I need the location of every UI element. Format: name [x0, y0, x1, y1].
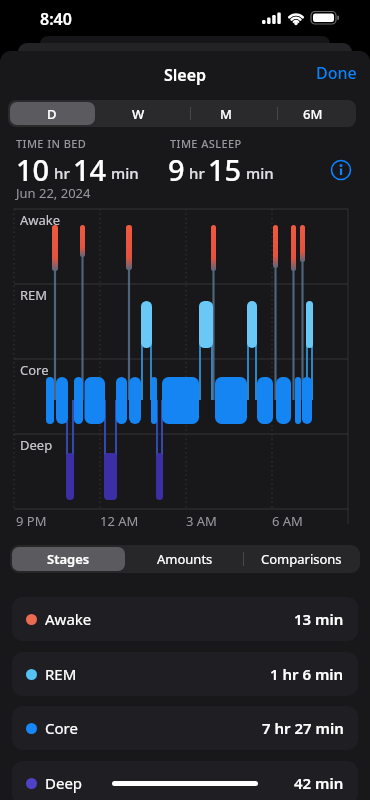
button[interactable]: M [182, 100, 269, 127]
staticText: Awake [45, 609, 92, 629]
staticText: 42 min [294, 773, 344, 793]
staticText: Done [316, 62, 357, 84]
button[interactable]: REM [12, 652, 358, 696]
staticText: 12 AM [100, 512, 139, 530]
staticText: M [220, 105, 232, 123]
staticText: Deep [45, 773, 83, 793]
staticText: REM [45, 664, 77, 684]
staticText: TIME ASLEEP [170, 136, 242, 151]
button[interactable] [328, 157, 354, 183]
staticText: 1 hr 6 min [270, 664, 344, 684]
staticText: Amounts [157, 550, 213, 568]
staticText: hr [54, 163, 70, 183]
staticText: Core [45, 718, 78, 738]
staticText: hr [189, 163, 205, 183]
button[interactable]: D [8, 100, 95, 127]
staticText: Deep [20, 436, 53, 454]
staticText: Sleep [0, 64, 370, 86]
staticText: 9 [168, 150, 185, 189]
staticText: 13 min [294, 609, 344, 629]
staticText: Awake [20, 211, 61, 229]
staticText: 6M [303, 105, 323, 123]
staticText: 7 hr 27 min [262, 718, 344, 738]
staticText: 3 AM [186, 512, 217, 530]
button[interactable]: Core [12, 706, 358, 750]
staticText: Stages [47, 550, 90, 568]
staticText: 8:40 [40, 8, 72, 30]
button[interactable]: Stages [10, 545, 126, 573]
staticText: D [47, 105, 57, 123]
staticText: 14 [73, 150, 107, 189]
staticText: 10 [16, 150, 50, 189]
button[interactable]: W [95, 100, 182, 127]
staticText: 9 PM [16, 512, 47, 530]
staticText: min [246, 163, 274, 183]
staticText: 6 AM [272, 512, 303, 530]
button[interactable]: Done [310, 57, 362, 89]
button[interactable]: Amounts [126, 545, 243, 573]
staticText: Comparisons [261, 550, 342, 568]
staticText: min [111, 163, 139, 183]
staticText: 15 [208, 150, 242, 189]
staticText: REM [20, 286, 48, 304]
button[interactable]: Deep [12, 761, 358, 800]
staticText: TIME IN BED [16, 136, 87, 151]
staticText: W [132, 105, 145, 123]
staticText: Jun 22, 2024 [16, 184, 91, 202]
staticText: Core [20, 361, 49, 379]
button[interactable]: Awake [12, 597, 358, 641]
button[interactable]: 6M [269, 100, 356, 127]
button[interactable]: Comparisons [243, 545, 360, 573]
